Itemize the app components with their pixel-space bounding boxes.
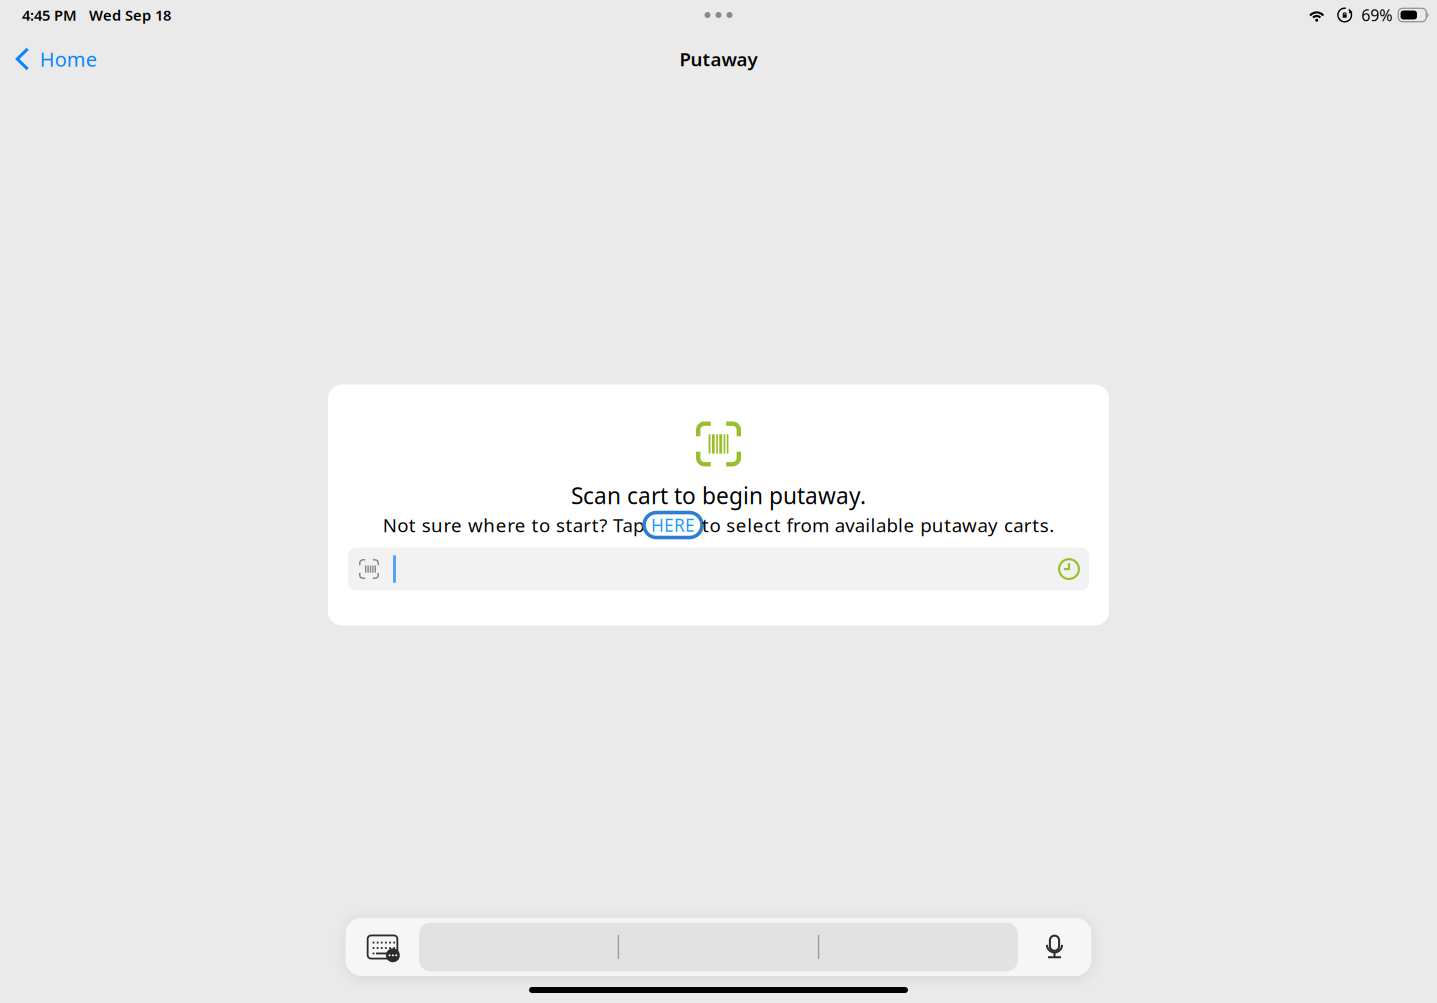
button[interactable]: Home xyxy=(10,40,103,78)
staticText: Wed Sep 18 xyxy=(89,5,171,25)
button[interactable]: Keyboard options xyxy=(346,920,419,973)
staticText: Home xyxy=(40,46,97,72)
button[interactable]: Scan or enter cart barcode xyxy=(348,548,1089,591)
staticText: Not sure where to start? Tap xyxy=(383,513,644,537)
staticText: 4:45 PM xyxy=(22,5,77,25)
staticText: to select from available putaway carts. xyxy=(702,513,1054,537)
staticText: Putaway xyxy=(679,47,757,71)
button[interactable]: HERE xyxy=(644,512,702,537)
staticText: 69% xyxy=(1361,4,1392,26)
staticText: HERE xyxy=(651,513,695,536)
button[interactable]: Dictate xyxy=(1018,920,1091,973)
staticText: Scan cart to begin putaway. xyxy=(571,480,866,510)
